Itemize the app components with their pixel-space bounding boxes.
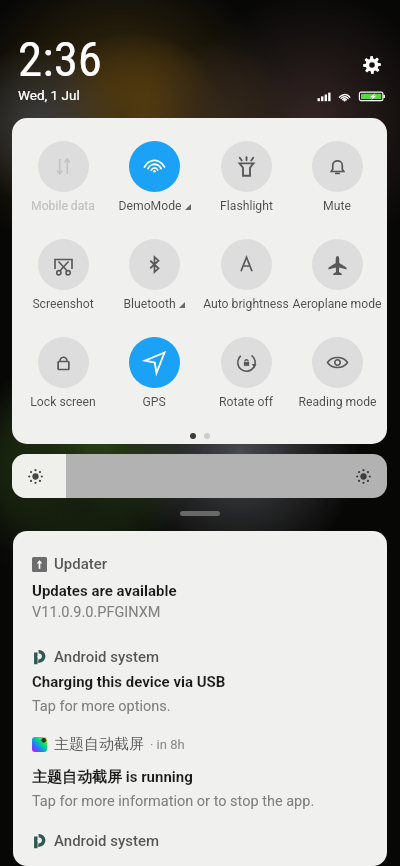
button[interactable]: GPS [108, 337, 200, 409]
staticText: 主题自动截屏 [54, 735, 144, 754]
button[interactable]: 主题自动截屏 [13, 723, 387, 822]
button[interactable]: Reading mode [291, 337, 383, 409]
staticText: GPS [142, 395, 166, 409]
button[interactable]: Auto brightness [200, 239, 292, 311]
button[interactable]: Flashlight [200, 141, 292, 213]
staticText: V11.0.9.0.PFGINXM [32, 604, 161, 621]
staticText: 2:36 [18, 31, 103, 88]
button[interactable]: Updater [13, 543, 387, 633]
staticText: Screenshot [32, 297, 94, 311]
button[interactable]: Android system [13, 820, 387, 866]
staticText: Tap for more options. [32, 698, 171, 715]
button[interactable]: Bluetooth [108, 239, 200, 311]
staticText: Updates are available [32, 582, 177, 600]
button[interactable]: Screenshot [17, 239, 109, 311]
button[interactable]: Brightness [12, 454, 387, 498]
staticText: Reading mode [298, 395, 377, 409]
staticText: Charging this device via USB [32, 673, 226, 691]
staticText: Auto brightness [203, 297, 289, 311]
staticText: Updater [54, 555, 108, 573]
staticText: Android system [54, 832, 160, 850]
staticText: 主题自动截屏 is running [32, 768, 193, 787]
staticText: Flashlight [220, 199, 273, 213]
button[interactable]: DemoMode [108, 141, 200, 213]
staticText: DemoMode [118, 199, 182, 213]
staticText: Lock screen [30, 395, 96, 409]
staticText: Android system [54, 648, 160, 666]
button[interactable]: Settings [357, 50, 386, 79]
staticText: Bluetooth [123, 297, 176, 311]
button[interactable]: Rotate off [200, 337, 292, 409]
staticText: · in 8h [150, 737, 185, 752]
staticText: Aeroplane mode [292, 297, 382, 311]
staticText: Mobile data [31, 199, 95, 213]
staticText: Tap for more information or to stop the … [32, 793, 315, 810]
button[interactable]: Lock screen [17, 337, 109, 409]
staticText: Mute [323, 199, 351, 213]
button[interactable]: Mute [291, 141, 383, 213]
button[interactable]: Android system [13, 636, 387, 726]
button[interactable]: Mobile data [17, 141, 109, 213]
staticText: Rotate off [219, 395, 273, 409]
button[interactable]: Aeroplane mode [291, 239, 383, 311]
staticText: Wed, 1 Jul [18, 87, 80, 103]
